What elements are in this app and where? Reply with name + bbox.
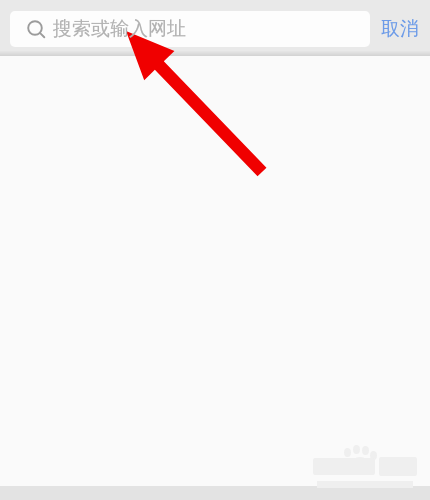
other: Pointer arrow annotation <box>120 28 266 176</box>
button[interactable]: 搜索或输入网址 <box>10 11 370 47</box>
staticText: 取消 <box>381 17 419 41</box>
button[interactable]: 取消 <box>374 10 426 48</box>
staticText: 搜索或输入网址 <box>53 17 186 41</box>
